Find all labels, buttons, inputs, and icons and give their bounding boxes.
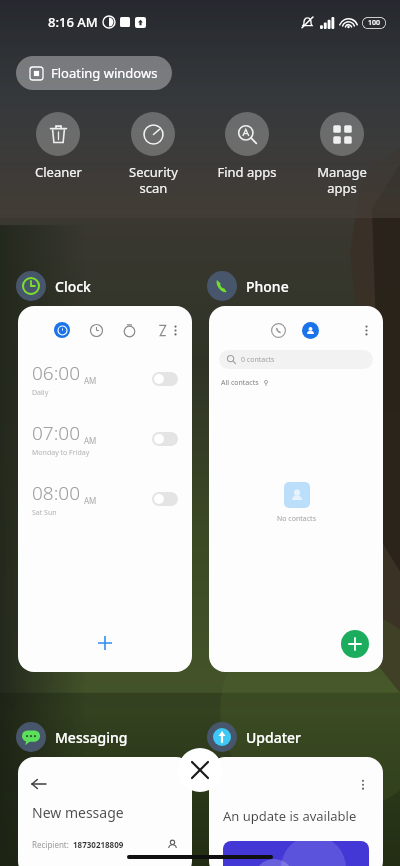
staticText: 18730218809 <box>73 839 124 850</box>
button[interactable]: New message <box>18 757 192 866</box>
button[interactable]: Add alarm <box>88 626 122 660</box>
button[interactable]: An update is available <box>209 757 383 866</box>
staticText: Monday to Friday <box>32 448 90 458</box>
staticText: AM <box>84 375 97 386</box>
staticText: 06:00 <box>32 360 81 386</box>
button[interactable]: 0 contacts <box>209 306 383 672</box>
staticText: Floating windows <box>51 64 158 82</box>
staticText: Updater <box>246 728 302 747</box>
button[interactable]: 06:00 <box>18 306 192 672</box>
staticText: No contacts <box>277 514 316 524</box>
staticText: Clock <box>55 277 91 296</box>
staticText: All contacts <box>221 378 259 388</box>
staticText: Security scan <box>129 163 178 196</box>
button[interactable]: Floating windows <box>16 56 172 90</box>
staticText: Phone <box>246 277 289 296</box>
staticText: Manage apps <box>317 163 367 196</box>
button[interactable]: Clock <box>16 270 91 302</box>
staticText: 8:16 AM <box>48 13 98 31</box>
button[interactable] <box>152 372 178 386</box>
staticText: Messaging <box>55 728 128 747</box>
staticText: 100 <box>368 18 381 28</box>
staticText: New message <box>32 803 124 822</box>
button[interactable]: Updater <box>207 721 302 753</box>
button[interactable]: Phone <box>207 270 289 302</box>
staticText: An update is available <box>223 807 357 825</box>
staticText: AM <box>84 435 97 446</box>
button[interactable]: Cleaner <box>15 112 101 181</box>
button[interactable]: Close all <box>178 748 222 792</box>
staticText: Cleaner <box>35 163 82 181</box>
button[interactable]: Find apps <box>204 112 290 181</box>
staticText: Recipient: <box>32 839 69 850</box>
button[interactable]: Security scan <box>110 112 196 196</box>
button[interactable]: 0 contacts <box>219 350 373 369</box>
staticText: 0 contacts <box>241 355 275 365</box>
staticText: Daily <box>32 388 49 398</box>
staticText: AM <box>84 495 97 506</box>
button[interactable] <box>152 432 178 446</box>
button[interactable]: Add contact <box>341 630 369 658</box>
staticText: Sat Sun <box>32 508 57 518</box>
staticText: 07:00 <box>32 420 81 446</box>
button[interactable]: Messaging <box>16 721 128 753</box>
button[interactable]: Manage apps <box>299 112 385 196</box>
button[interactable] <box>152 492 178 506</box>
staticText: 08:00 <box>32 480 81 506</box>
staticText: Find apps <box>217 163 277 181</box>
